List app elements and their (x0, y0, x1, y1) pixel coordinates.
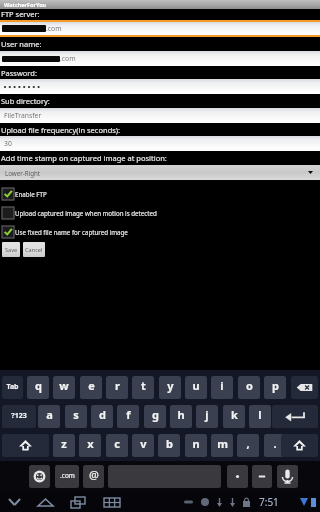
staticText: , (246, 436, 250, 451)
button[interactable]: t (132, 376, 154, 399)
button[interactable]: Recent apps (67, 492, 89, 512)
button[interactable]: q (27, 376, 49, 399)
button[interactable]: l (249, 405, 271, 428)
staticText: d (99, 407, 106, 422)
staticText: x (87, 436, 94, 451)
button[interactable]: Period (227, 465, 248, 488)
button[interactable]: d (91, 405, 113, 428)
staticText: b (166, 436, 173, 451)
button[interactable]: . (264, 434, 286, 457)
staticText: Add time stamp on captured image at posi… (1, 153, 167, 163)
button[interactable]: e (80, 376, 102, 399)
button[interactable]: g (144, 405, 166, 428)
staticText: h (177, 407, 185, 422)
staticText: Upload file frequency(in seconds): (1, 125, 121, 135)
staticText: o (246, 378, 253, 393)
button[interactable]: k (223, 405, 245, 428)
button[interactable]: b (158, 434, 180, 457)
staticText: n (192, 436, 200, 451)
staticText: s (73, 407, 79, 422)
button[interactable]: h (170, 405, 192, 428)
staticText: y (167, 378, 174, 393)
staticText: w (59, 378, 69, 393)
button[interactable]: .com (0, 20, 320, 37)
staticText: Cancel (25, 246, 43, 254)
staticText: FTP server: (1, 9, 40, 19)
staticText: p (272, 378, 279, 393)
staticText: FileTransfer (4, 111, 42, 120)
staticText: j (205, 407, 209, 422)
staticText: f (126, 407, 131, 422)
staticText: q (35, 378, 42, 393)
staticText: 7:51 (259, 495, 279, 509)
staticText: WatcherForYou (4, 1, 47, 8)
staticText: r (115, 378, 120, 393)
button[interactable]: FileTransfer (0, 107, 320, 124)
staticText: z (61, 436, 67, 451)
staticText: t (141, 378, 146, 393)
button[interactable]: @ (83, 465, 104, 488)
button[interactable] (0, 78, 320, 95)
button[interactable]: u (185, 376, 207, 399)
button[interactable]: Emoji (29, 465, 50, 488)
button[interactable]: i (211, 376, 233, 399)
button[interactable]: z (53, 434, 75, 457)
button[interactable]: Upload captured image when motion is det… (0, 206, 320, 219)
button[interactable]: Voice input (277, 465, 298, 488)
button[interactable]: ?123 (2, 405, 36, 428)
button[interactable]: Enable FTP (0, 187, 320, 200)
staticText: Upload captured image when motion is det… (15, 209, 157, 217)
button[interactable]: j (196, 405, 218, 428)
button[interactable]: Enter (272, 405, 318, 428)
button[interactable]: .com (0, 50, 320, 67)
staticText: Password: (1, 68, 37, 78)
button[interactable]: y (159, 376, 181, 399)
staticText: ?123 (11, 411, 27, 421)
button[interactable]: Shift (281, 434, 318, 457)
button[interactable]: Home (34, 492, 56, 512)
button[interactable]: 30 (0, 135, 320, 152)
button[interactable]: s (65, 405, 87, 428)
staticText: Save (5, 246, 18, 254)
button[interactable]: v (132, 434, 154, 457)
button[interactable]: c (106, 434, 128, 457)
button[interactable]: p (264, 376, 286, 399)
staticText: Sub directory: (1, 96, 50, 106)
button[interactable]: .com (55, 465, 79, 488)
button[interactable]: Cancel (23, 242, 45, 257)
staticText: g (152, 407, 159, 422)
staticText: a (46, 407, 53, 422)
button[interactable]: o (238, 376, 260, 399)
staticText: e (88, 378, 95, 393)
button[interactable]: Lower-Right (0, 164, 320, 181)
staticText: l (258, 407, 262, 422)
button[interactable]: r (106, 376, 128, 399)
staticText: .com (60, 471, 75, 480)
staticText: k (231, 407, 238, 422)
staticText: i (220, 378, 224, 393)
button[interactable]: m (211, 434, 233, 457)
button[interactable]: n (185, 434, 207, 457)
button[interactable]: Hide keyboard (3, 492, 25, 512)
staticText: 30 (4, 139, 12, 148)
button[interactable]: Save (2, 242, 20, 257)
button[interactable]: Tab (2, 376, 23, 399)
button[interactable]: w (53, 376, 75, 399)
staticText: Enable FTP (15, 190, 47, 198)
staticText: . (273, 436, 277, 451)
staticText: User name: (1, 39, 42, 49)
button[interactable]: Keyboard (101, 492, 123, 512)
staticText: Use fixed file name for captured image (15, 228, 128, 236)
button[interactable]: , (237, 434, 259, 457)
button[interactable]: Use fixed file name for captured image (0, 225, 320, 238)
button[interactable]: f (117, 405, 139, 428)
button[interactable]: Dash (252, 465, 272, 488)
staticText: c (114, 436, 120, 451)
button[interactable]: a (38, 405, 60, 428)
staticText: Lower-Right (5, 169, 41, 177)
button[interactable]: Shift (2, 434, 49, 457)
button[interactable]: x (79, 434, 101, 457)
staticText: @ (89, 467, 99, 482)
button[interactable]: Backspace (291, 376, 318, 399)
